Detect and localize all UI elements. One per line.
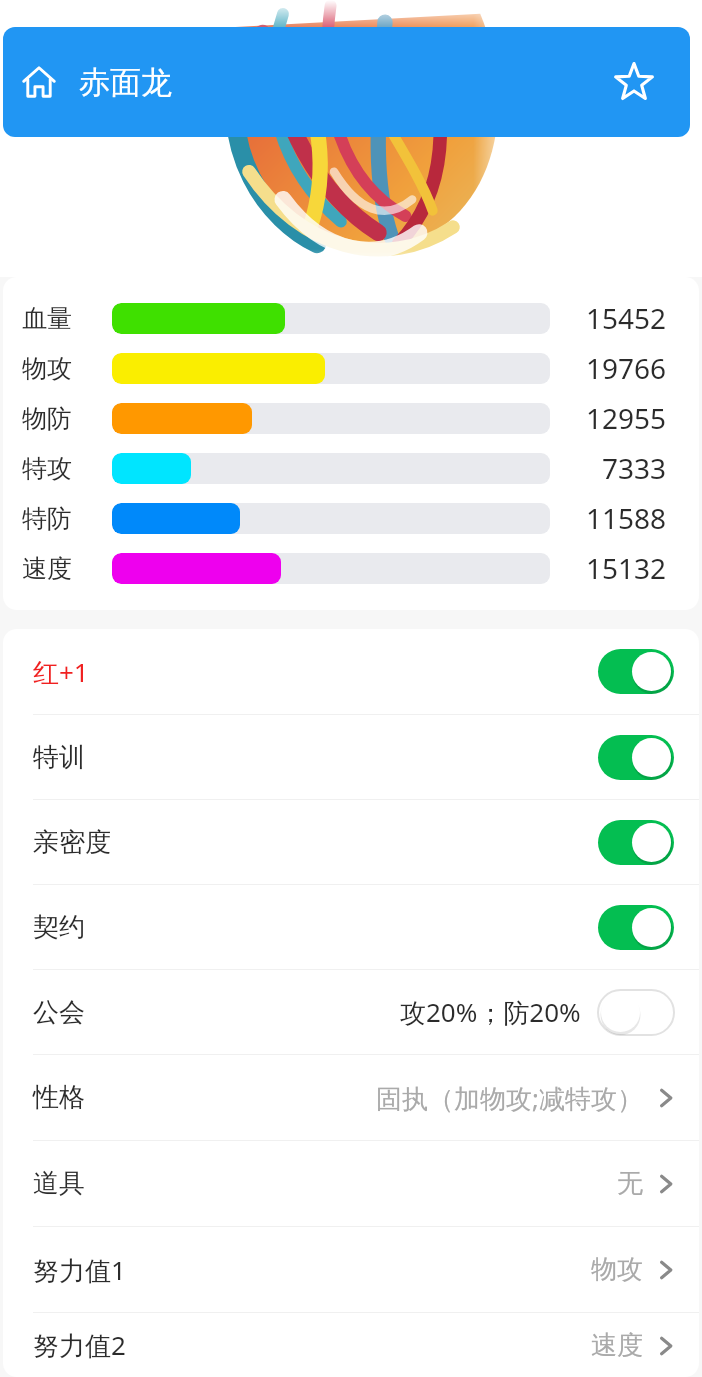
staticText: 契约 [33, 911, 85, 944]
staticText: 固执（加物攻;减特攻） [376, 1080, 643, 1116]
staticText: 7333 [546, 449, 666, 487]
staticText: 12955 [546, 399, 666, 437]
staticText: 公会 [33, 996, 85, 1029]
staticText: 特训 [33, 741, 85, 774]
staticText: 亲密度 [33, 826, 111, 859]
staticText: 物防 [22, 403, 72, 434]
staticText: 速度 [22, 553, 72, 584]
button[interactable]: 公会 [3, 969, 699, 1054]
button[interactable]: 努力值2 [3, 1312, 699, 1377]
button[interactable]: Home [11, 54, 67, 110]
staticText: 赤面龙 [79, 63, 172, 102]
button[interactable]: Off [598, 990, 674, 1035]
staticText: 15132 [546, 549, 666, 587]
button[interactable]: 红+1 [3, 629, 699, 714]
staticText: 努力值2 [33, 1327, 126, 1363]
staticText: 物攻 [22, 353, 72, 384]
button[interactable]: 性格 [3, 1054, 699, 1140]
staticText: 血量 [22, 303, 72, 334]
button[interactable]: 道具 [3, 1140, 699, 1226]
button[interactable]: Favorite [606, 54, 662, 110]
staticText: 努力值1 [33, 1252, 126, 1288]
button[interactable]: 努力值1 [3, 1226, 699, 1312]
button[interactable]: 契约 [3, 884, 699, 969]
button[interactable]: 特训 [3, 714, 699, 799]
staticText: 15452 [546, 299, 666, 337]
button[interactable]: On [598, 649, 674, 694]
staticText: 11588 [546, 499, 666, 537]
staticText: 特防 [22, 503, 72, 534]
staticText: 道具 [33, 1167, 85, 1200]
button[interactable]: On [598, 820, 674, 865]
button[interactable]: 亲密度 [3, 799, 699, 884]
staticText: 特攻 [22, 453, 72, 484]
button[interactable]: On [598, 735, 674, 780]
staticText: 物攻 [591, 1253, 643, 1286]
button[interactable]: On [598, 905, 674, 950]
staticText: 19766 [546, 349, 666, 387]
staticText: 攻20%；防20% [400, 994, 581, 1030]
staticText: 性格 [33, 1081, 85, 1114]
staticText: 红+1 [33, 654, 89, 690]
staticText: 速度 [591, 1329, 643, 1362]
staticText: 无 [617, 1167, 643, 1200]
